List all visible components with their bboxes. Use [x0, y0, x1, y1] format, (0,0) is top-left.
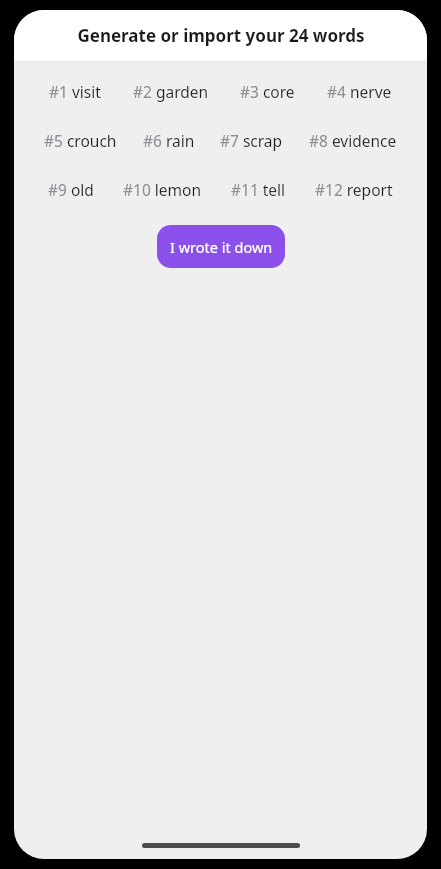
- staticText: #6 rain: [143, 130, 195, 151]
- button[interactable]: #10 lemon: [121, 176, 203, 203]
- staticText: Generate or import your 24 words: [77, 24, 365, 47]
- button[interactable]: #6 rain: [141, 127, 197, 154]
- staticText: I wrote it down: [170, 237, 273, 257]
- button[interactable]: #7 scrap: [218, 127, 285, 154]
- staticText: #2 garden: [133, 81, 209, 102]
- staticText: #4 nerve: [327, 81, 392, 102]
- staticText: #1 visit: [49, 81, 101, 102]
- button[interactable]: Home: [142, 843, 300, 848]
- staticText: #11 tell: [231, 179, 286, 200]
- button[interactable]: #4 nerve: [325, 78, 394, 105]
- button[interactable]: #11 tell: [229, 176, 288, 203]
- staticText: #8 evidence: [309, 130, 397, 151]
- staticText: #5 crouch: [44, 130, 117, 151]
- button[interactable]: #8 evidence: [307, 127, 399, 154]
- button[interactable]: #5 crouch: [42, 127, 119, 154]
- button[interactable]: #3 core: [238, 78, 297, 105]
- button[interactable]: #1 visit: [47, 78, 103, 105]
- staticText: #3 core: [240, 81, 295, 102]
- staticText: #12 report: [315, 179, 393, 200]
- button[interactable]: #12 report: [313, 176, 395, 203]
- button[interactable]: #9 old: [46, 176, 96, 203]
- staticText: #10 lemon: [123, 179, 201, 200]
- staticText: #9 old: [48, 179, 94, 200]
- button[interactable]: #2 garden: [131, 78, 211, 105]
- staticText: #7 scrap: [220, 130, 283, 151]
- button[interactable]: I wrote it down: [157, 225, 285, 268]
